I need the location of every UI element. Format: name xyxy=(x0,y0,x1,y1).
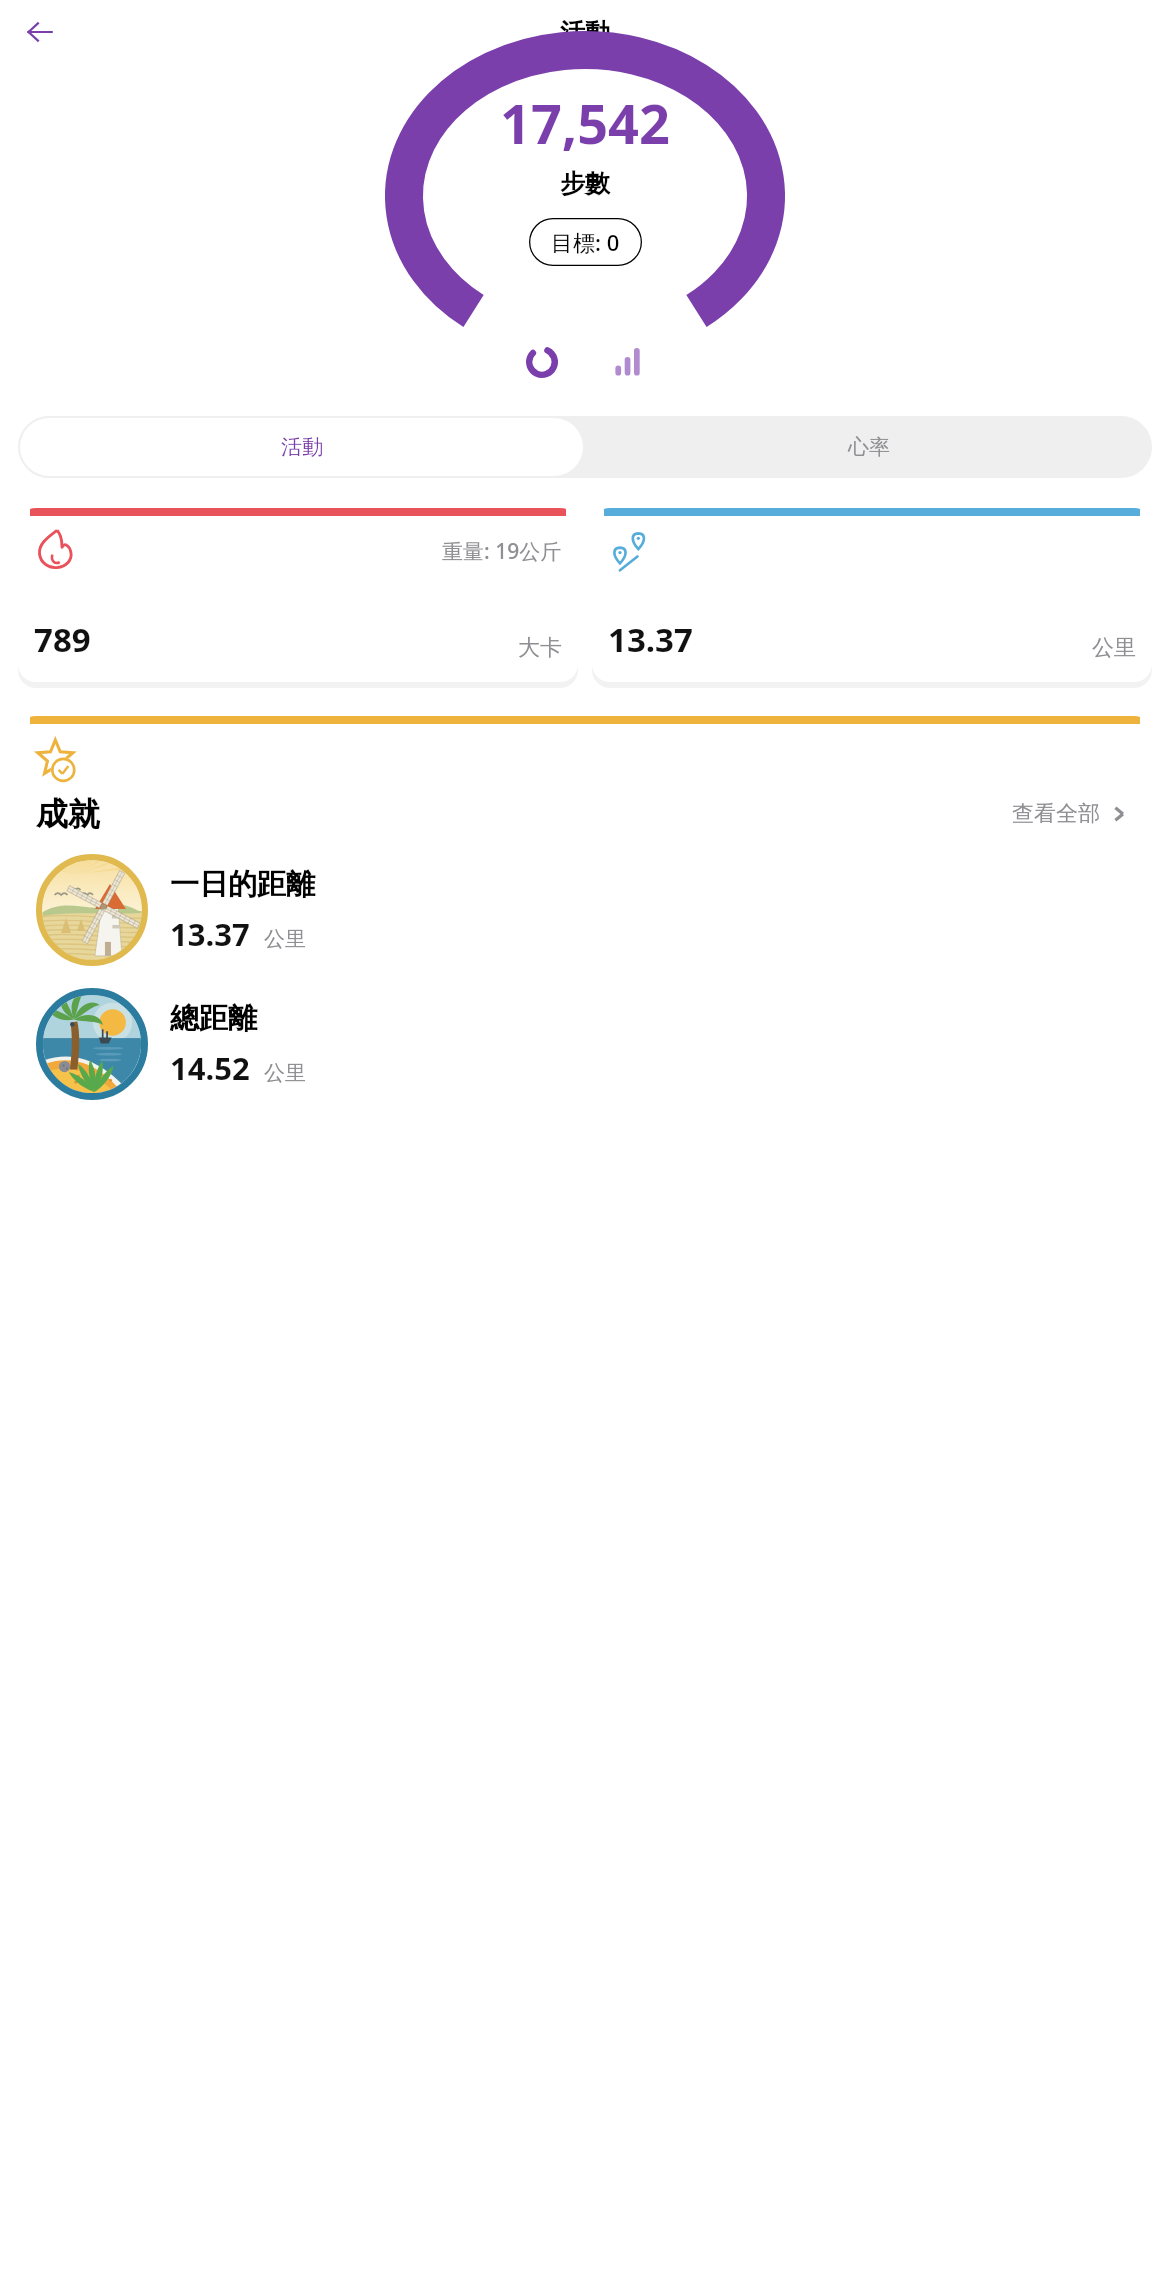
staticText: 17,542 xyxy=(500,86,670,160)
staticText: 活動 xyxy=(560,17,610,48)
staticText: 公里 xyxy=(1092,634,1136,662)
staticText: 公里 xyxy=(264,1060,306,1086)
button[interactable]: 心率 xyxy=(585,416,1152,478)
staticText: 789 xyxy=(34,617,91,662)
button[interactable]: 一日的距離 xyxy=(36,850,1134,970)
button[interactable]: 13.37 xyxy=(592,508,1152,688)
staticText: 13.37 xyxy=(170,913,250,955)
button[interactable]: Chart view xyxy=(602,336,654,388)
staticText: 一日的距離 xyxy=(170,866,315,903)
button[interactable]: Ring view xyxy=(516,336,568,388)
button[interactable]: Back xyxy=(14,6,66,58)
staticText: 公里 xyxy=(264,926,306,952)
staticText: 13.37 xyxy=(608,617,693,662)
staticText: 目標: 0 xyxy=(551,227,620,257)
staticText: 14.52 xyxy=(170,1047,250,1089)
staticText: 成就 xyxy=(36,794,100,834)
staticText: 重量: 19公斤 xyxy=(442,537,562,566)
button[interactable]: 活動 xyxy=(20,418,583,476)
staticText: 查看全部 xyxy=(1012,800,1100,828)
button[interactable]: 重量: 19公斤 xyxy=(18,508,578,688)
button[interactable]: 目標: 0 xyxy=(528,217,643,267)
button[interactable]: 查看全部 xyxy=(1006,794,1134,834)
staticText: 心率 xyxy=(848,434,890,460)
button[interactable]: 成就 xyxy=(18,716,1152,1416)
staticText: 總距離 xyxy=(170,1000,257,1037)
staticText: 大卡 xyxy=(518,634,562,662)
button[interactable]: 總距離 xyxy=(36,984,1134,1104)
staticText: 活動 xyxy=(281,434,323,460)
staticText: 步數 xyxy=(560,168,610,199)
